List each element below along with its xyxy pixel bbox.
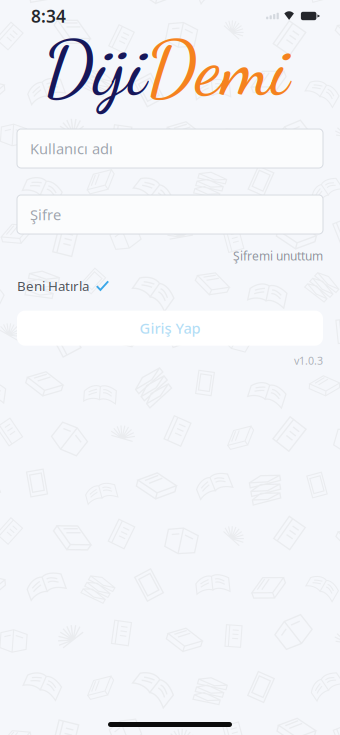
staticText: Şifre — [30, 205, 61, 224]
staticText: v1.0.3 — [294, 354, 323, 368]
staticText: Şifremi unuttum — [233, 248, 323, 264]
button[interactable]: Beni Hatırla — [17, 277, 323, 295]
staticText: Diji — [43, 23, 146, 115]
staticText: Demi — [146, 23, 289, 115]
button[interactable]: Şifremi unuttum — [233, 246, 323, 266]
staticText: 8:34 — [31, 4, 66, 27]
staticText: Beni Hatırla — [17, 277, 89, 295]
staticText: Giriş Yap — [139, 318, 200, 338]
staticText: Kullanıcı adı — [30, 139, 113, 158]
button[interactable]: Giriş Yap — [17, 311, 323, 346]
